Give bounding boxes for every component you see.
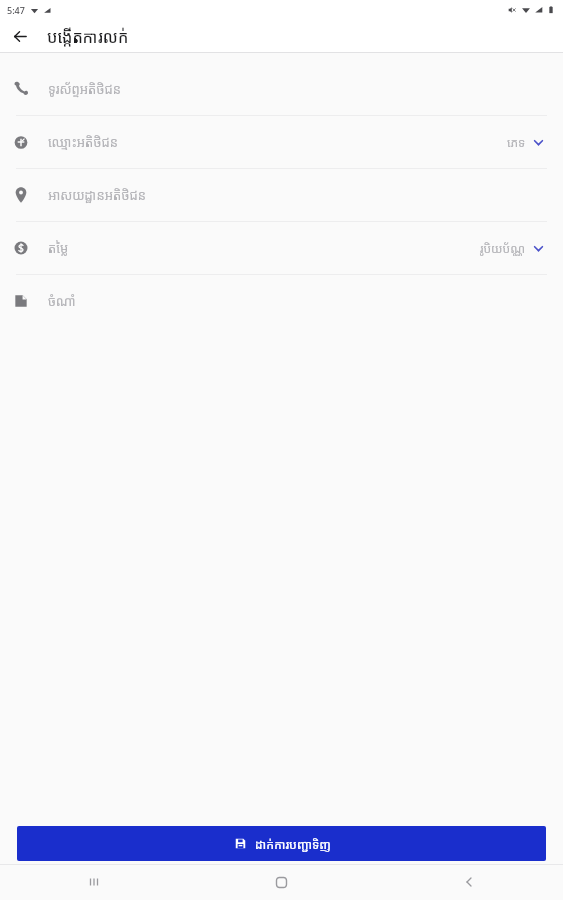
button[interactable]: Location [0,169,563,222]
staticText: ទូរស័ព្ទអតិថិជន [48,80,122,98]
staticText: អាសយដ្ឋានអតិថិជន [48,186,147,204]
button[interactable]: Currency [0,222,563,275]
button[interactable]: ដាក់ការបញ្ជាទិញ [17,826,546,861]
button[interactable]: Phone [0,63,563,116]
staticText: បង្កើតការលក់ [47,26,129,48]
button[interactable]: Home [187,864,375,900]
other: Currency [11,238,31,258]
button[interactable]: Back [375,864,563,900]
staticText: ចំណាំ [48,292,76,310]
staticText: ឈ្មោះអតិថិជន [48,133,119,151]
staticText: ភេទ [507,134,526,150]
staticText: តម្លៃ [48,239,69,257]
staticText: ដាក់ការបញ្ជាទិញ [255,836,331,852]
button[interactable]: Gender [0,116,563,169]
other: Note [11,291,31,311]
staticText: រូបិយប័ណ្ណ [480,240,526,256]
staticText: 5:47 [7,4,25,16]
button[interactable]: Recent apps [0,864,187,900]
button[interactable]: Note [0,275,563,327]
other: Phone [11,79,31,99]
button[interactable]: Back [0,20,40,53]
other: Location [11,185,31,205]
other: Gender [11,132,31,152]
